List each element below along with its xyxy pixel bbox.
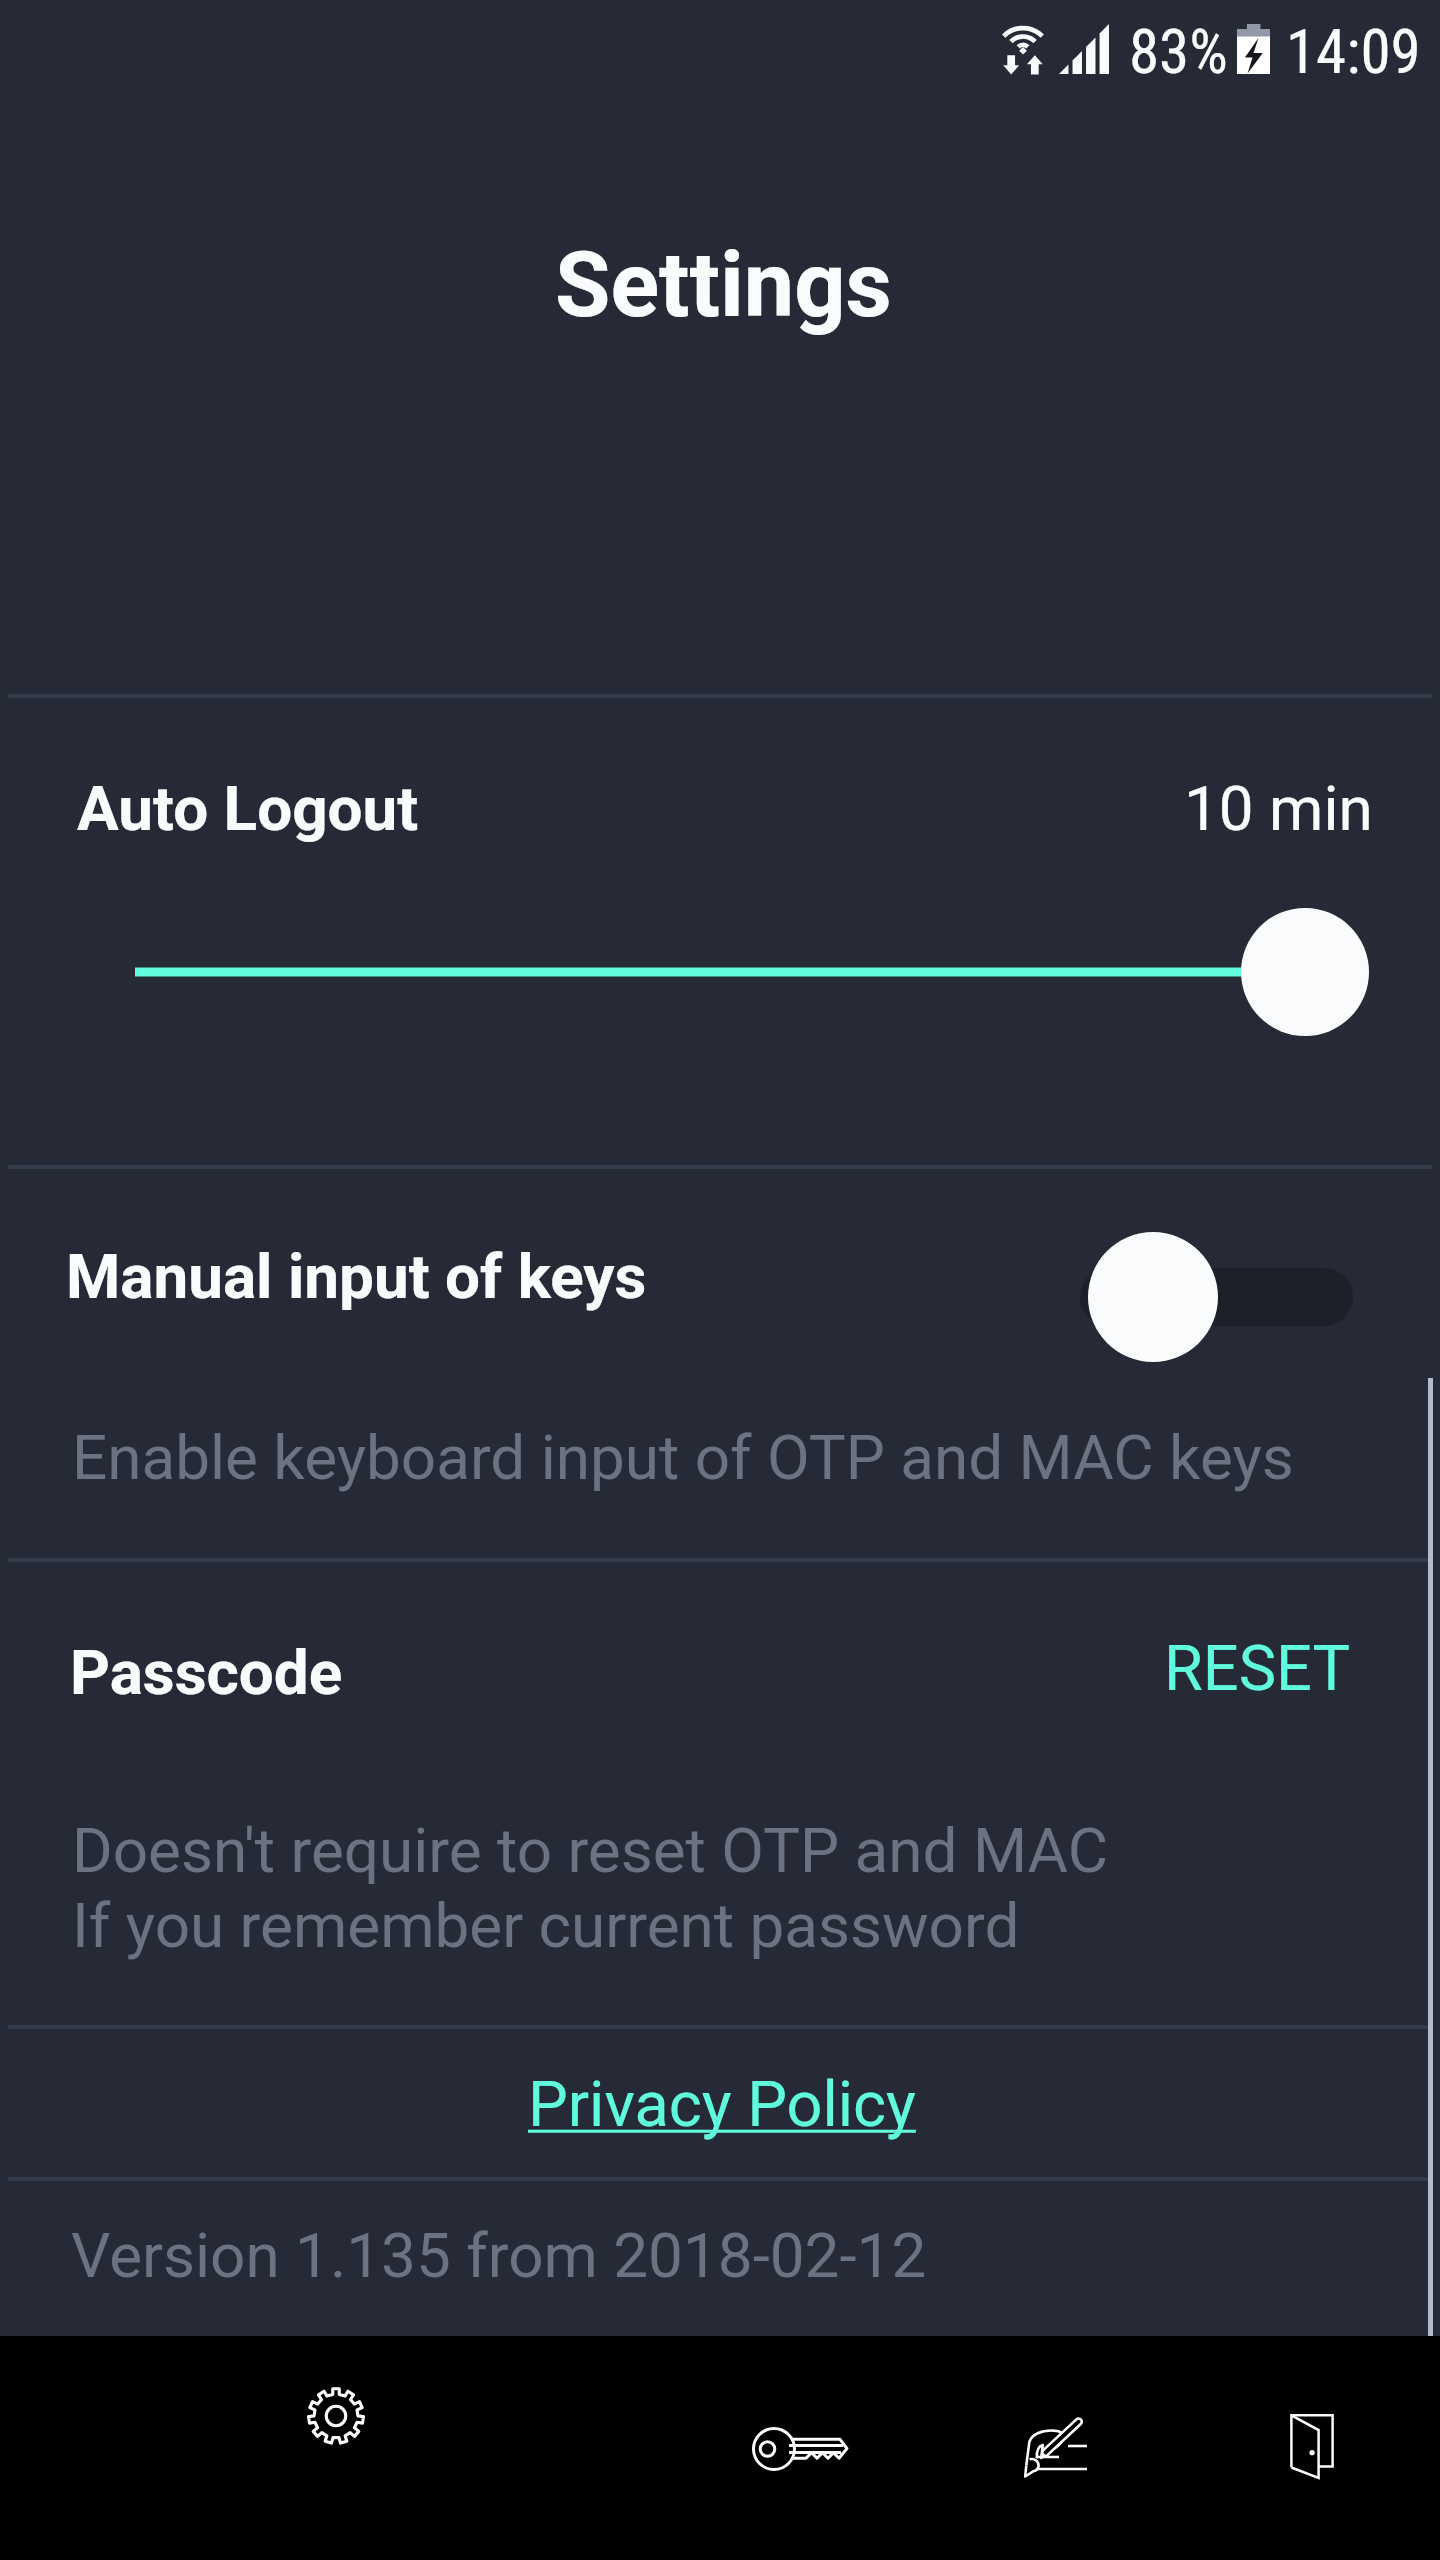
staticText: Enable keyboard input of OTP and MAC key… [72,1421,1294,1494]
button[interactable]: Settings [226,2336,446,2560]
staticText: Auto Logout [77,772,419,845]
staticText: Manual input of keys [66,1240,647,1313]
button[interactable]: Privacy Policy [470,2040,970,2170]
staticText: RESET [1164,1632,1351,1706]
button[interactable]: Manual input of keys toggle, off [1070,1222,1370,1372]
staticText: Privacy Policy [528,2068,916,2142]
staticText: Passcode [70,1636,343,1709]
button[interactable]: Keys [690,2336,910,2560]
staticText: 14:09 [1286,16,1421,87]
staticText: 83% [1129,16,1228,87]
button[interactable]: Exit [1202,2336,1422,2560]
staticText: Version 1.135 from 2018-02-12 [71,2219,927,2292]
staticText: Settings [555,233,892,338]
staticText: If you remember current password [72,1889,1020,1962]
staticText: 10 min [1184,772,1373,845]
button[interactable]: Sign [946,2336,1166,2560]
staticText: Doesn't require to reset OTP and MAC [72,1814,1109,1887]
button[interactable]: Auto logout timeout slider [120,900,1380,1045]
button[interactable]: RESET [1140,1620,1380,1730]
